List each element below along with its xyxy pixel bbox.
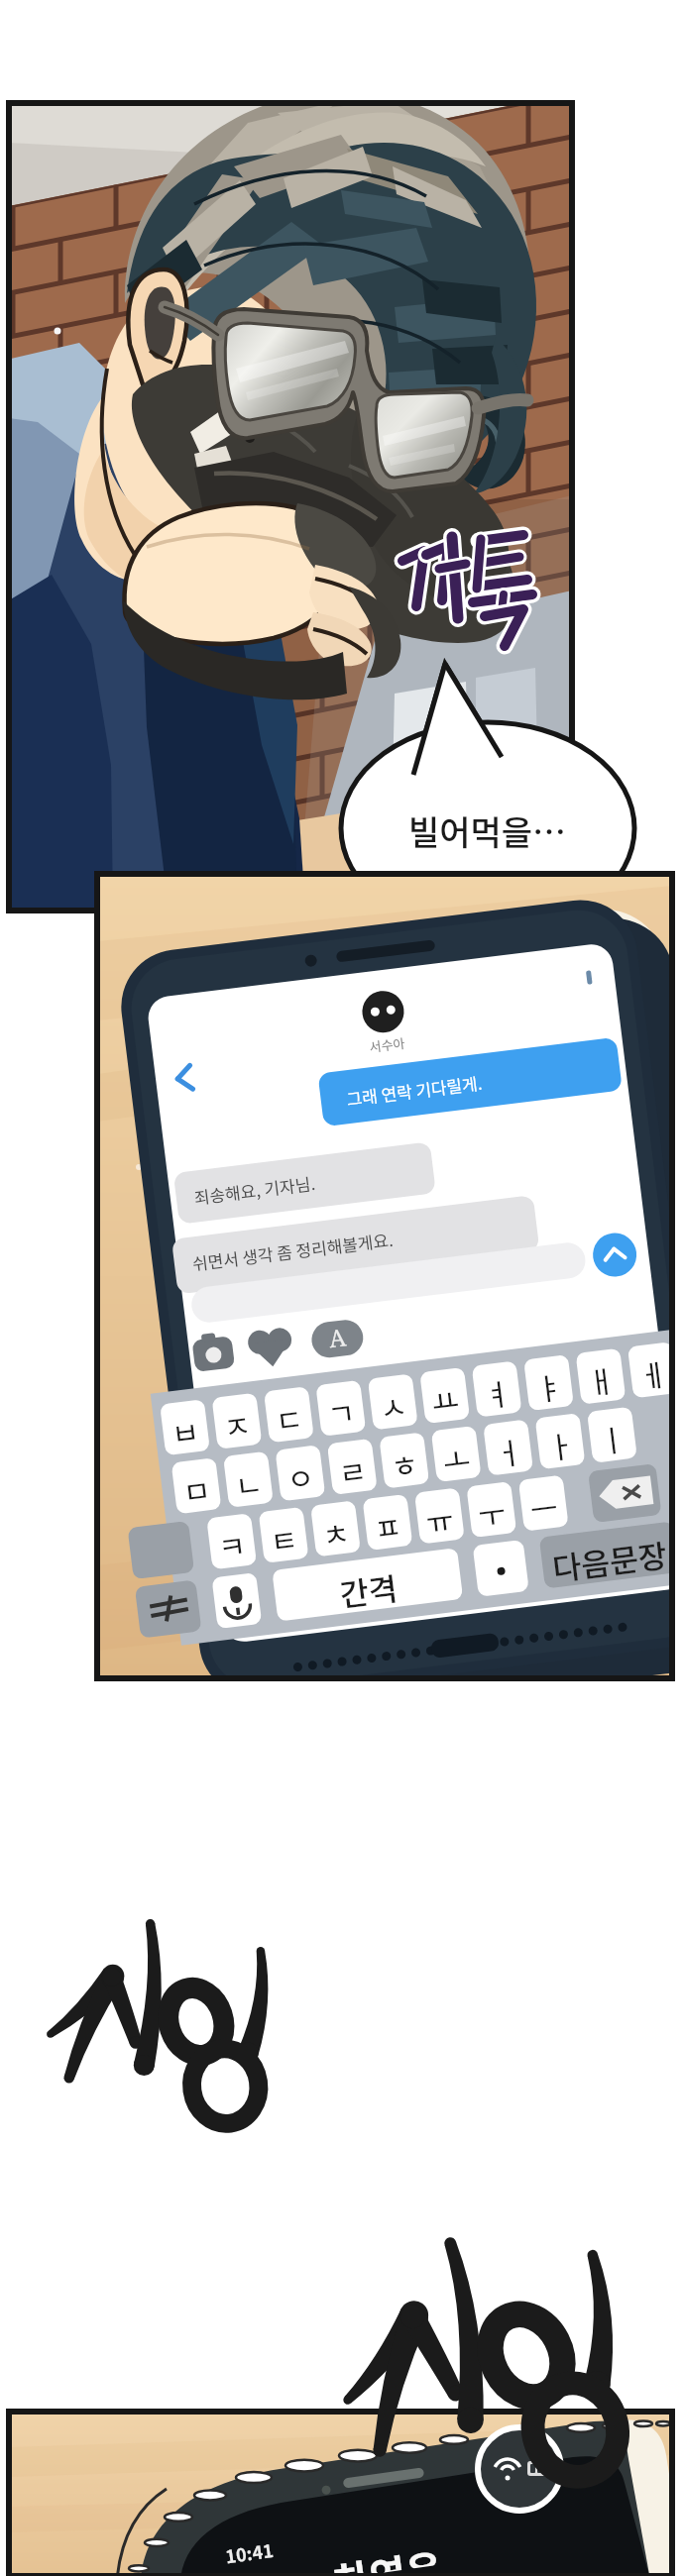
button[interactable]	[0, 0, 684, 2576]
